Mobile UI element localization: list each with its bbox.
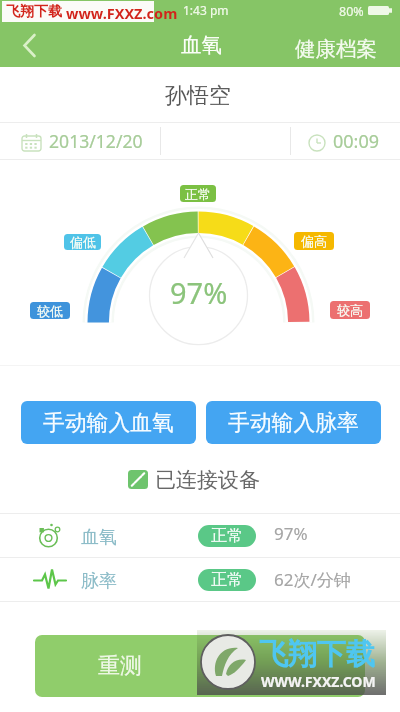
staticText: 脉率: [81, 570, 117, 593]
staticText: 重测: [98, 652, 142, 680]
staticText: 正常: [211, 526, 243, 546]
button[interactable]: 手动输入脉率: [206, 401, 381, 444]
staticText: 00:09: [333, 129, 380, 154]
staticText: WWW.FXXZ.COM: [261, 672, 376, 691]
staticText: www.FXXZ.com: [66, 3, 178, 23]
button[interactable]: 血氧: [181, 32, 222, 58]
staticText: 血氧: [81, 526, 117, 549]
staticText: 97%: [170, 273, 228, 312]
staticText: 1:43 pm: [183, 2, 229, 18]
staticText: 正常: [211, 570, 243, 590]
staticText: 健康档案: [295, 36, 377, 62]
staticText: 已连接设备: [155, 467, 260, 493]
staticText: 62次/分钟: [274, 568, 351, 591]
staticText: 80%: [339, 3, 364, 20]
staticText: 333.0: [333, 129, 380, 154]
button[interactable]: [0, 558, 400, 601]
staticText: 飞翔下载: [6, 3, 62, 21]
staticText: 偏低: [70, 234, 96, 250]
staticText: 孙悟空: [165, 82, 231, 110]
staticText: 正常: [185, 186, 211, 202]
staticText: 97%: [274, 522, 308, 545]
button[interactable]: 重测: [35, 635, 365, 697]
staticText: 手动输入脉率: [228, 409, 359, 436]
staticText: 手动输入血氧: [43, 409, 174, 436]
button[interactable]: 手动输入血氧: [21, 401, 196, 444]
button[interactable]: [0, 514, 400, 557]
staticText: 飞翔下载: [259, 636, 375, 673]
staticText: 偏高: [301, 233, 327, 249]
staticText: 血氧: [181, 32, 222, 58]
button[interactable]: Back: [10, 26, 50, 66]
staticText: 较低: [37, 303, 63, 319]
button[interactable]: 健康档案: [295, 36, 377, 62]
staticText: 2013/12/20: [49, 129, 143, 153]
staticText: 较高: [337, 302, 363, 318]
